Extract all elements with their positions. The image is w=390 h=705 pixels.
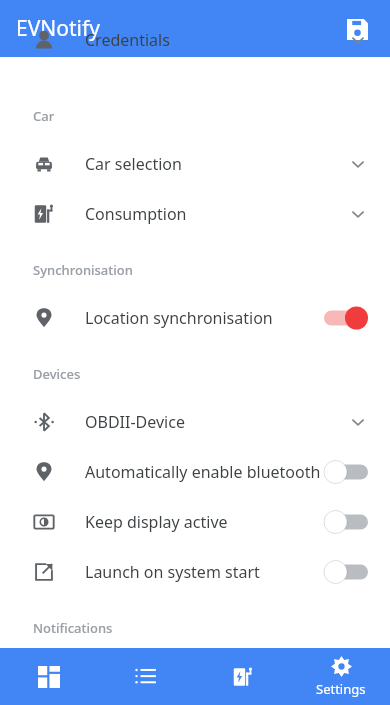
staticText: Devices — [33, 365, 81, 383]
staticText: Keep display active — [85, 511, 324, 533]
staticText: Notifications — [33, 619, 113, 637]
button[interactable]: Automatically enable bluetooth — [0, 447, 390, 497]
staticText: Consumption — [85, 203, 348, 225]
staticText: Location synchronisation — [85, 307, 324, 329]
staticText: Synchronisation — [33, 261, 133, 279]
button[interactable]: Consumption — [0, 189, 390, 239]
button[interactable]: Save — [336, 8, 378, 50]
button[interactable]: OBDII-Device — [0, 397, 390, 447]
button[interactable]: Car selection — [0, 139, 390, 189]
button[interactable]: Location synchronisation — [0, 293, 390, 343]
staticText: Car — [33, 107, 55, 125]
button[interactable]: Dashboard — [0, 648, 97, 705]
staticText: OBDII-Device — [85, 411, 348, 433]
button[interactable]: Launch on system start — [0, 547, 390, 597]
staticText: Car selection — [85, 153, 348, 175]
staticText: Launch on system start — [85, 561, 324, 583]
staticText: Automatically enable bluetooth — [85, 461, 324, 483]
staticText: EVNotify — [16, 14, 100, 43]
staticText: Credentials — [85, 29, 348, 51]
button[interactable]: List — [97, 648, 194, 705]
staticText: Settings — [316, 680, 366, 698]
button[interactable]: Settings — [292, 648, 390, 705]
button[interactable]: Charging — [194, 648, 292, 705]
button[interactable]: Keep display active — [0, 497, 390, 547]
